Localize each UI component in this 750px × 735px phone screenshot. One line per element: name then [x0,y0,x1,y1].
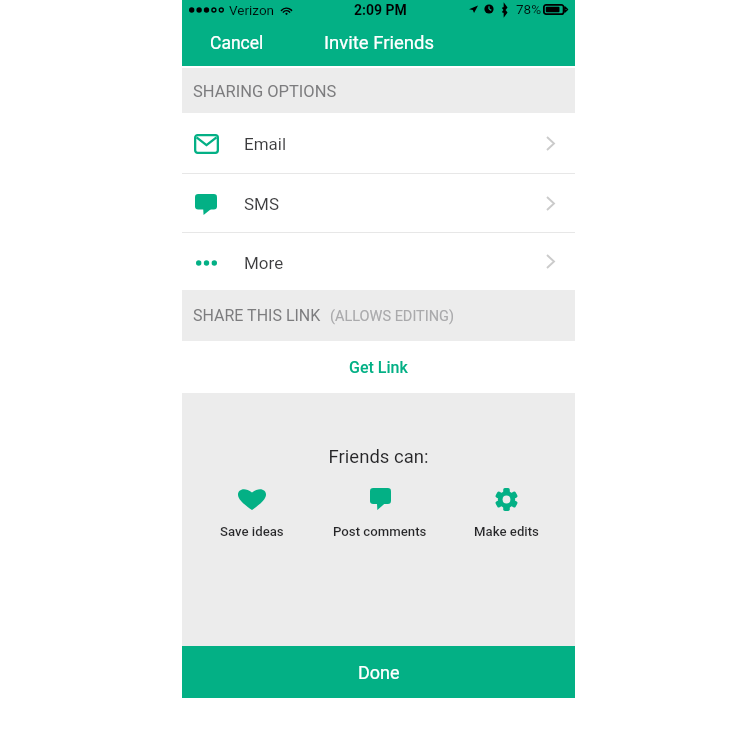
button[interactable]: Make edits [446,486,566,541]
staticText: SHARE THIS LINK [193,306,321,325]
button[interactable]: Cancel [182,23,286,64]
button[interactable]: Done [182,646,575,698]
staticText: Cancel [210,33,264,54]
button[interactable]: Save ideas [192,486,312,541]
staticText: Friends can: [182,446,575,468]
button[interactable]: SMS [182,174,575,232]
staticText: 78% [516,1,542,17]
staticText: SMS [244,194,280,214]
button[interactable]: Email [182,113,575,173]
staticText: Make edits [474,524,539,539]
staticText: Done [358,662,400,683]
staticText: Invite Friends [324,32,434,54]
button[interactable]: More [182,233,575,290]
staticText: Post comments [333,524,427,539]
staticText: Get Link [349,358,408,377]
button[interactable]: Get Link [182,341,575,393]
staticText: SHARING OPTIONS [193,82,337,101]
staticText: Email [244,134,287,154]
staticText: Save ideas [220,524,284,539]
staticText: More [244,253,284,273]
staticText: Verizon [229,2,275,18]
button[interactable]: Post comments [320,486,440,541]
staticText: (ALLOWS EDITING) [330,308,454,325]
staticText: 2:09 PM [354,2,407,18]
